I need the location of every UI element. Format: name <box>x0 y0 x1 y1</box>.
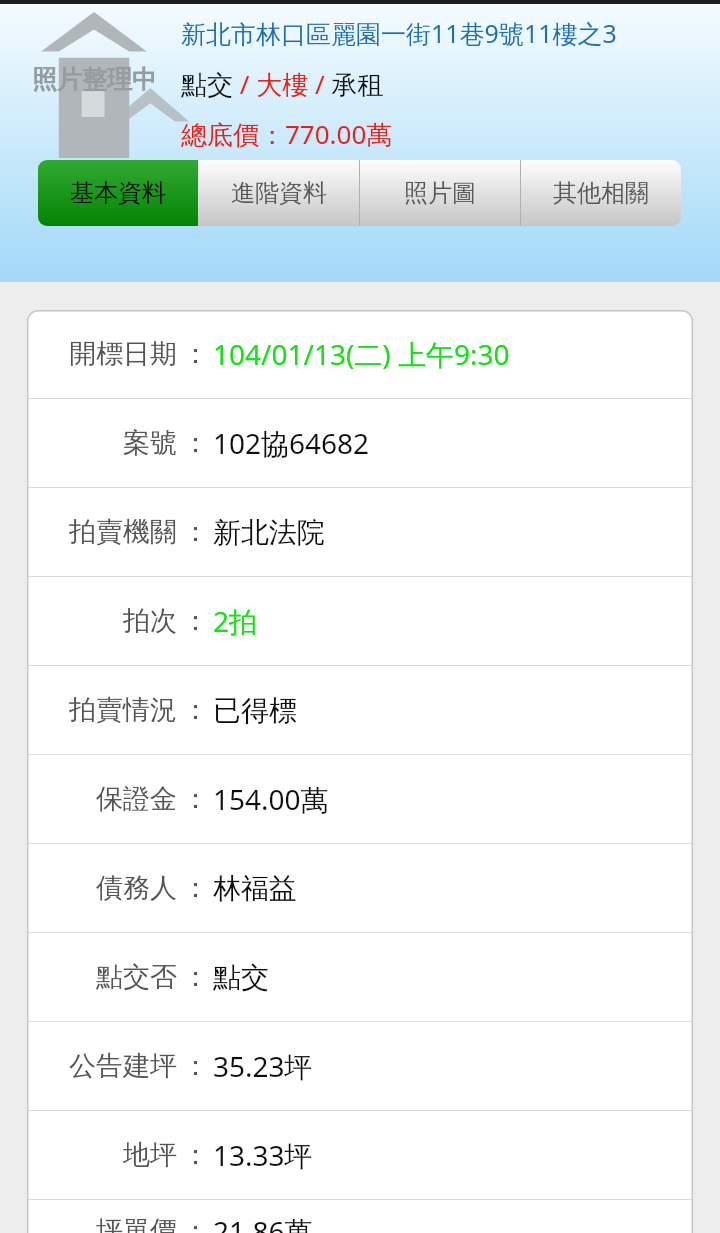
button[interactable]: 其他相關 <box>520 160 681 226</box>
staticText: ： <box>182 782 209 816</box>
staticText: ： <box>182 1049 209 1083</box>
staticText: 拍次 <box>123 604 177 638</box>
staticText: 104/01/13(二) 上午9:30 <box>213 335 510 373</box>
staticText: 已得標 <box>213 693 297 728</box>
button[interactable]: 拍賣機關 <box>27 488 693 576</box>
staticText: ： <box>182 960 209 994</box>
button[interactable]: 保證金 <box>27 755 693 843</box>
button[interactable]: 債務人 <box>27 844 693 932</box>
staticText: 拍賣機關 <box>69 515 177 549</box>
staticText: 35.23坪 <box>213 1047 313 1085</box>
button[interactable]: 拍次 <box>27 577 693 665</box>
button[interactable]: 基本資料 <box>38 160 198 226</box>
button[interactable]: 地坪 <box>27 1111 693 1199</box>
button[interactable]: 進階資料 <box>198 160 359 226</box>
staticText: 照片整理中 <box>32 64 157 95</box>
staticText: ： <box>182 1214 209 1233</box>
button[interactable]: 開標日期 <box>27 310 693 398</box>
staticText: 債務人 <box>96 871 177 905</box>
staticText: ： <box>182 1138 209 1172</box>
staticText: 13.33坪 <box>213 1136 313 1174</box>
staticText: 2拍 <box>213 602 258 640</box>
staticText: ： <box>182 693 209 727</box>
staticText: 基本資料 <box>70 178 166 208</box>
staticText: 點交 <box>213 960 269 995</box>
staticText: 新北法院 <box>213 515 325 550</box>
staticText: ： <box>182 337 209 371</box>
button[interactable]: 案號 <box>27 399 693 487</box>
button[interactable]: 公告建坪 <box>27 1022 693 1110</box>
staticText: 地坪 <box>123 1138 177 1172</box>
staticText: 點交 / 大樓 / 承租 <box>181 66 384 102</box>
button[interactable]: 拍賣情況 <box>27 666 693 754</box>
staticText: 102協64682 <box>213 424 370 462</box>
staticText: 其他相關 <box>553 178 649 208</box>
staticText: 案號 <box>123 426 177 460</box>
staticText: 坪單價 <box>96 1214 177 1233</box>
staticText: 開標日期 <box>69 337 177 371</box>
staticText: 林福益 <box>213 871 297 906</box>
staticText: 總底價：770.00萬 <box>181 116 393 152</box>
staticText: 154.00萬 <box>213 780 329 818</box>
staticText: 保證金 <box>96 782 177 816</box>
staticText: 進階資料 <box>231 178 327 208</box>
staticText: ： <box>182 604 209 638</box>
other: 照片整理中 <box>6 6 182 158</box>
staticText: ： <box>182 426 209 460</box>
staticText: 新北市林口區麗園一街11巷9號11樓之3 <box>181 16 617 50</box>
staticText: ： <box>182 515 209 549</box>
staticText: 點交否 <box>96 960 177 994</box>
staticText: ： <box>182 871 209 905</box>
staticText: 拍賣情況 <box>69 693 177 727</box>
staticText: 照片圖 <box>404 178 476 208</box>
staticText: 21.86萬 <box>213 1212 313 1233</box>
button[interactable]: 照片圖 <box>359 160 520 226</box>
button[interactable]: 點交否 <box>27 933 693 1021</box>
button[interactable]: 坪單價 <box>27 1200 693 1233</box>
staticText: 公告建坪 <box>69 1049 177 1083</box>
